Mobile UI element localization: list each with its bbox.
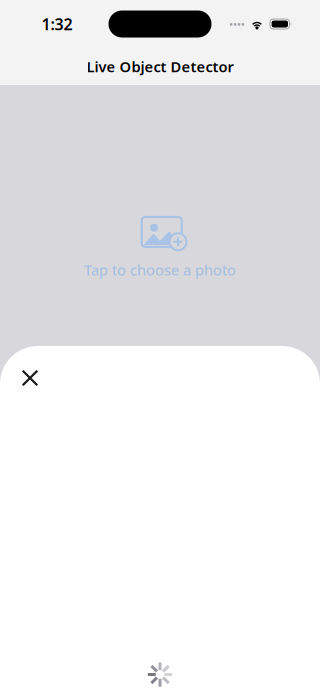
button[interactable]: Tap to choose a photo [84,216,236,279]
staticText: Live Object Detector [86,57,233,76]
staticText: Tap to choose a photo [84,260,236,279]
button[interactable]: Close [8,356,52,400]
staticText: 1:32 [41,13,72,35]
